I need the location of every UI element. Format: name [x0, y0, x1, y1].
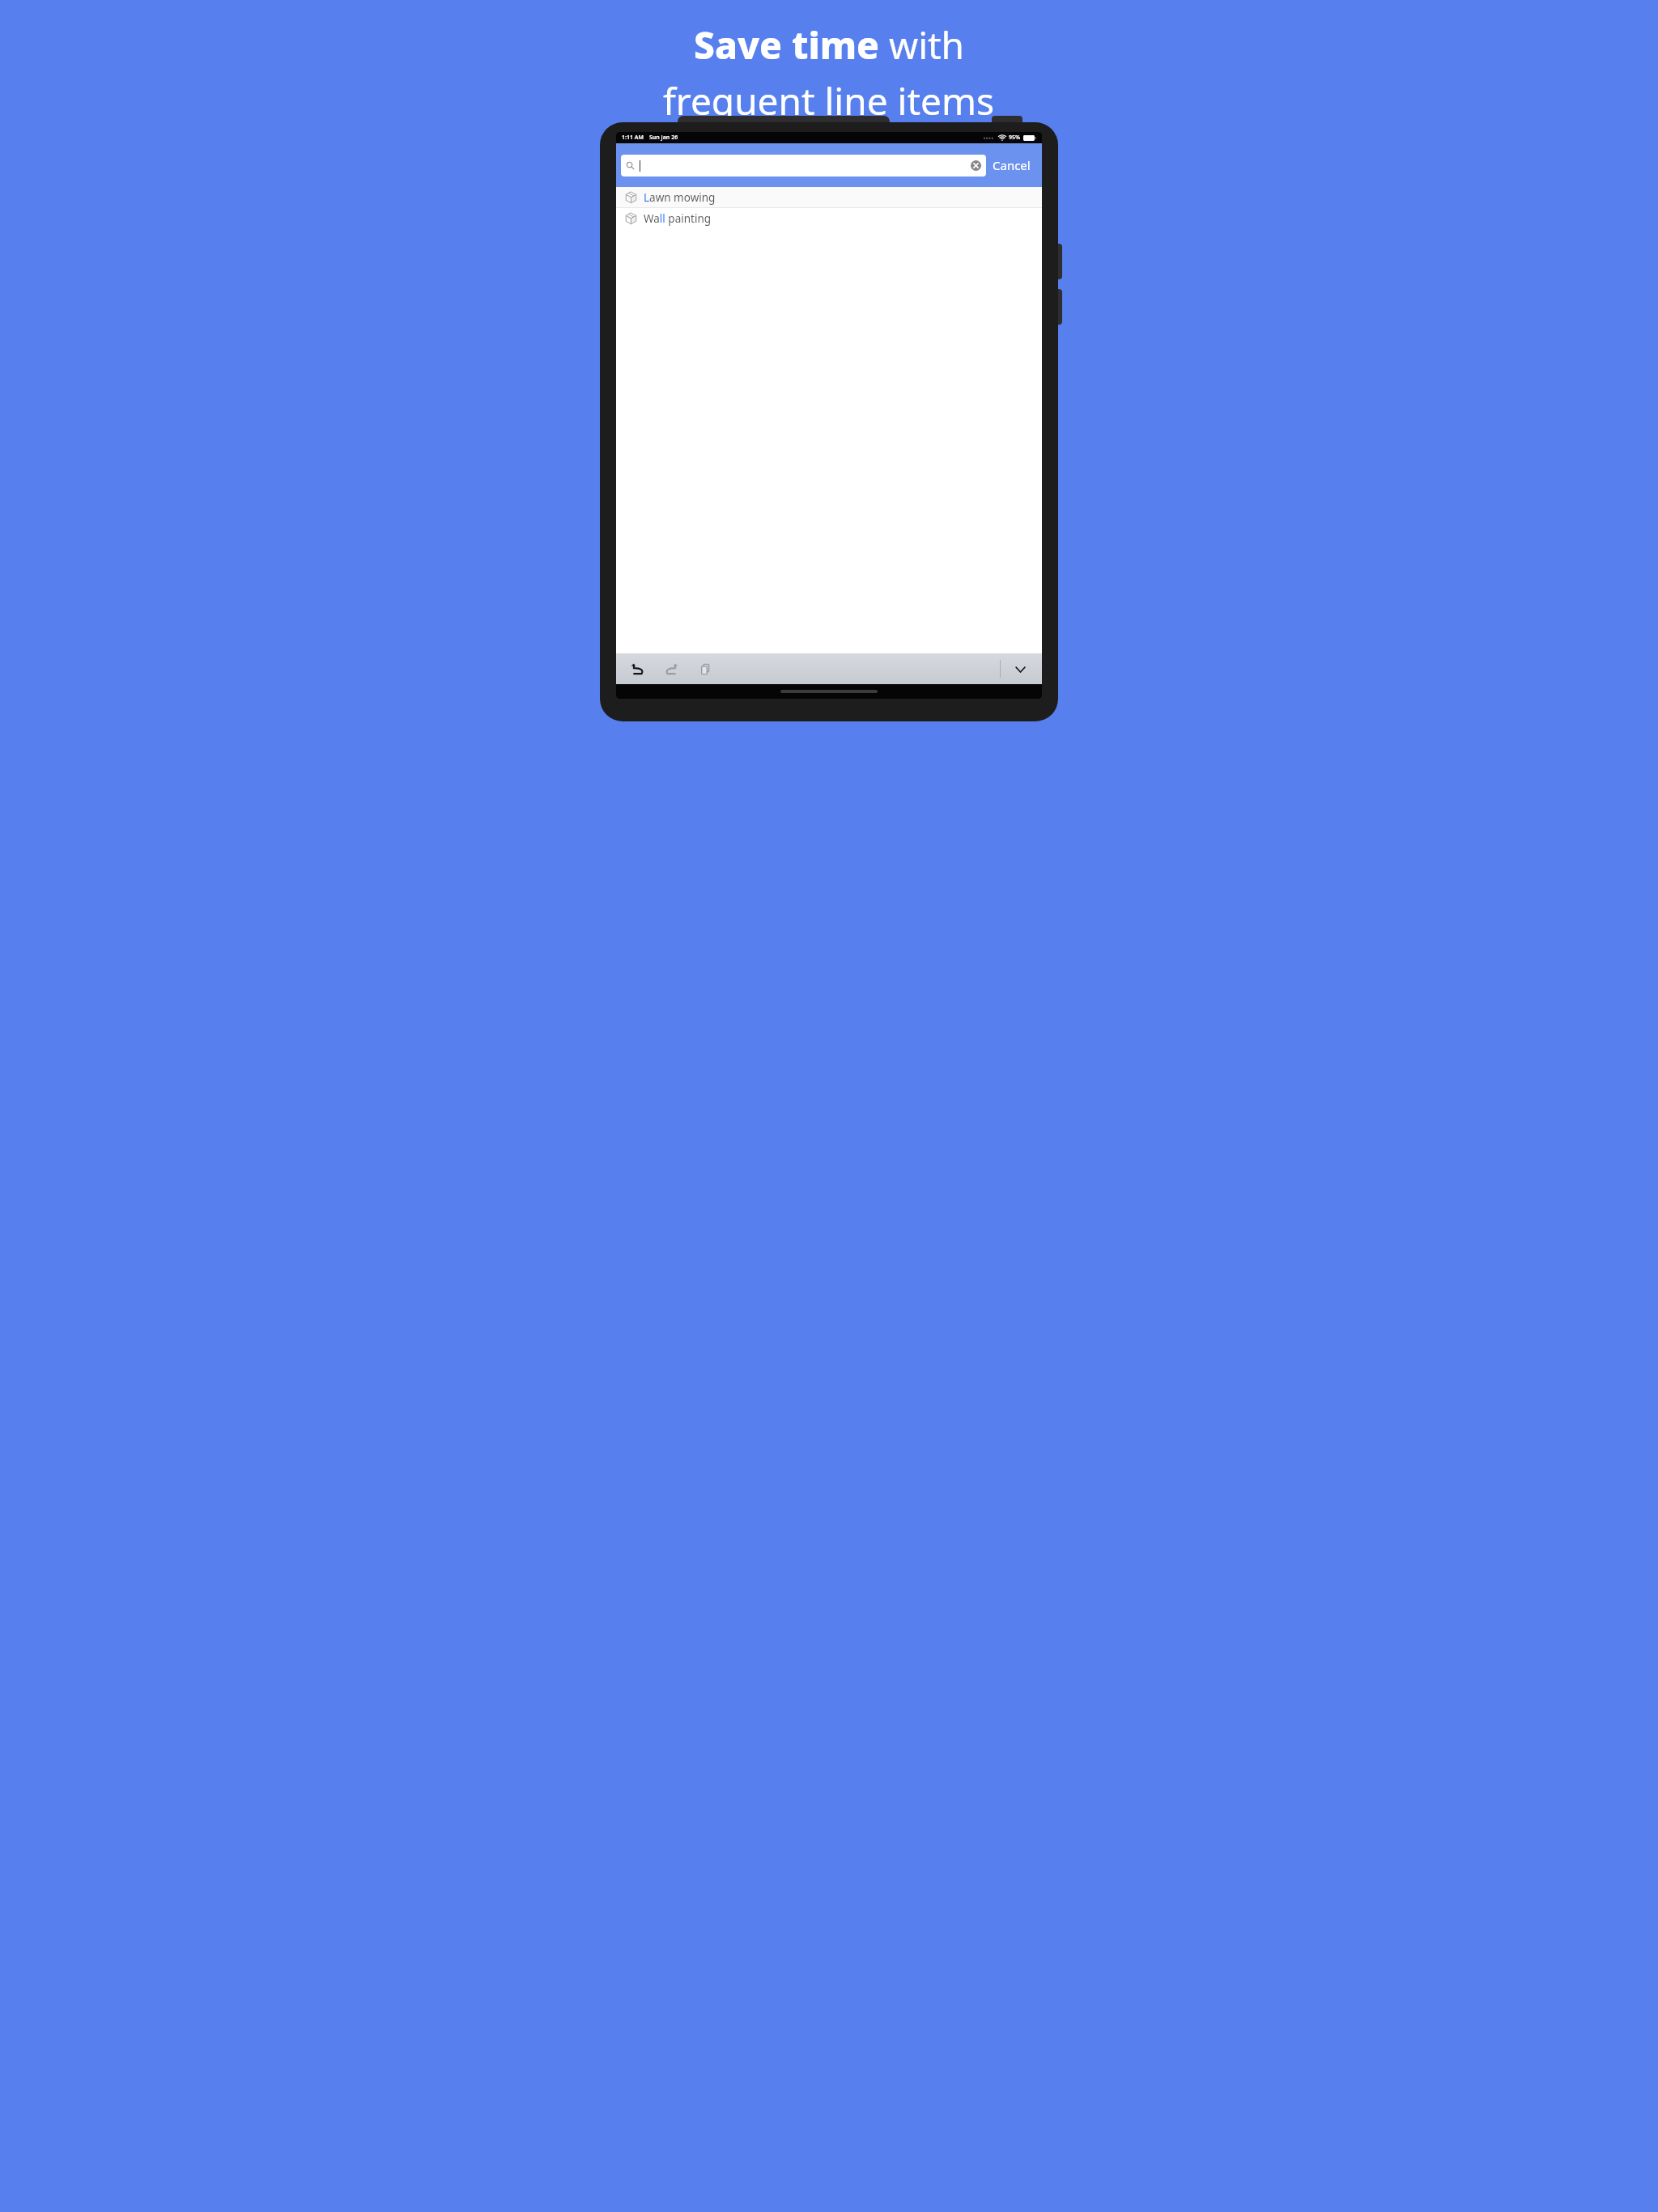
- button[interactable]: Clear text: [621, 155, 986, 177]
- button[interactable]: Undo: [626, 657, 648, 680]
- staticText: Sun Jan 26: [649, 134, 678, 142]
- staticText: Save time with: [694, 19, 965, 70]
- staticText: Lawn mowing: [644, 190, 716, 205]
- staticText: 1:11 AM: [622, 134, 644, 142]
- staticText: 95%: [1009, 134, 1021, 142]
- staticText: frequent line items: [663, 75, 995, 126]
- button[interactable]: Redo: [660, 657, 682, 680]
- button[interactable]: Hide keyboard: [1009, 657, 1031, 680]
- button[interactable]: Cancel: [986, 152, 1037, 178]
- button[interactable]: Paste: [694, 657, 716, 680]
- button[interactable]: Lawn mowing: [616, 187, 1042, 207]
- staticText: Wall painting: [644, 211, 712, 226]
- button[interactable]: Wall painting: [616, 208, 1042, 228]
- button[interactable]: Clear text: [971, 160, 981, 171]
- staticText: Cancel: [993, 157, 1031, 173]
